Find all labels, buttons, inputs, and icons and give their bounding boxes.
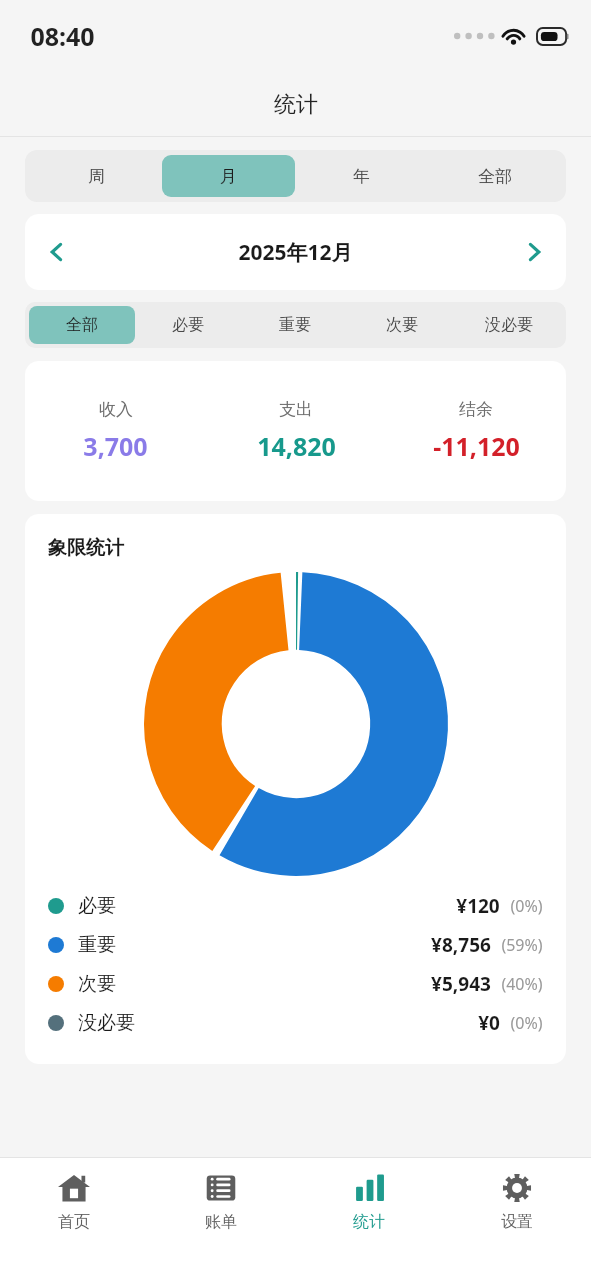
button[interactable]: 上一月	[25, 220, 89, 284]
button[interactable]: 全部	[29, 306, 135, 344]
staticText: 2025年12月	[238, 238, 353, 267]
button[interactable]: 收入	[25, 361, 206, 501]
button[interactable]: 账单	[147, 1158, 295, 1280]
button[interactable]: 设置	[443, 1158, 591, 1280]
button[interactable]: 下一月	[502, 220, 566, 284]
button[interactable]: 没必要	[455, 306, 562, 344]
staticText: 月	[220, 166, 237, 187]
staticText: 结余	[459, 399, 493, 420]
staticText: 没必要	[78, 1011, 135, 1035]
staticText: 3,700	[83, 429, 148, 463]
button[interactable]: 次要	[348, 306, 455, 344]
staticText: (40%)	[501, 973, 543, 995]
staticText: (0%)	[510, 1012, 543, 1034]
staticText: ¥0	[478, 1010, 500, 1036]
staticText: 重要	[78, 933, 116, 957]
staticText: 周	[88, 166, 105, 187]
staticText: 没必要	[485, 315, 533, 335]
staticText: (59%)	[501, 934, 543, 956]
staticText: 年	[353, 166, 370, 187]
button[interactable]: 月	[162, 155, 295, 197]
staticText: ¥120	[456, 893, 500, 919]
button[interactable]: 年	[295, 155, 428, 197]
staticText: 象限统计	[48, 536, 124, 560]
staticText: 统计	[274, 91, 318, 119]
button[interactable]: 结余	[386, 361, 566, 501]
staticText: 首页	[58, 1212, 90, 1232]
button[interactable]: 次要	[25, 964, 566, 1003]
button[interactable]: 必要	[135, 306, 241, 344]
button[interactable]: 没必要	[25, 1003, 566, 1042]
staticText: (0%)	[510, 895, 543, 917]
staticText: 收入	[99, 399, 133, 420]
staticText: 设置	[501, 1212, 533, 1232]
staticText: 必要	[78, 894, 116, 918]
button[interactable]: 全部	[428, 155, 561, 197]
button[interactable]: 周	[30, 155, 162, 197]
staticText: 统计	[353, 1212, 385, 1232]
staticText: 08:40	[30, 19, 95, 53]
staticText: 全部	[478, 166, 512, 187]
staticText: 次要	[78, 972, 116, 996]
button[interactable]: 重要	[241, 306, 348, 344]
staticText: 次要	[386, 315, 418, 335]
button[interactable]: 首页	[0, 1158, 147, 1280]
staticText: 14,820	[257, 429, 336, 463]
staticText: ¥5,943	[431, 971, 491, 997]
button[interactable]: 重要	[25, 925, 566, 964]
staticText: -11,120	[433, 429, 520, 463]
button[interactable]: 支出	[206, 361, 386, 501]
staticText: 重要	[279, 315, 311, 335]
staticText: 必要	[172, 315, 204, 335]
staticText: ¥8,756	[431, 932, 491, 958]
staticText: 账单	[205, 1212, 237, 1232]
staticText: 支出	[279, 399, 313, 420]
staticText: 全部	[66, 315, 98, 335]
button[interactable]: 统计	[295, 1158, 443, 1280]
button[interactable]: 必要	[25, 886, 566, 925]
